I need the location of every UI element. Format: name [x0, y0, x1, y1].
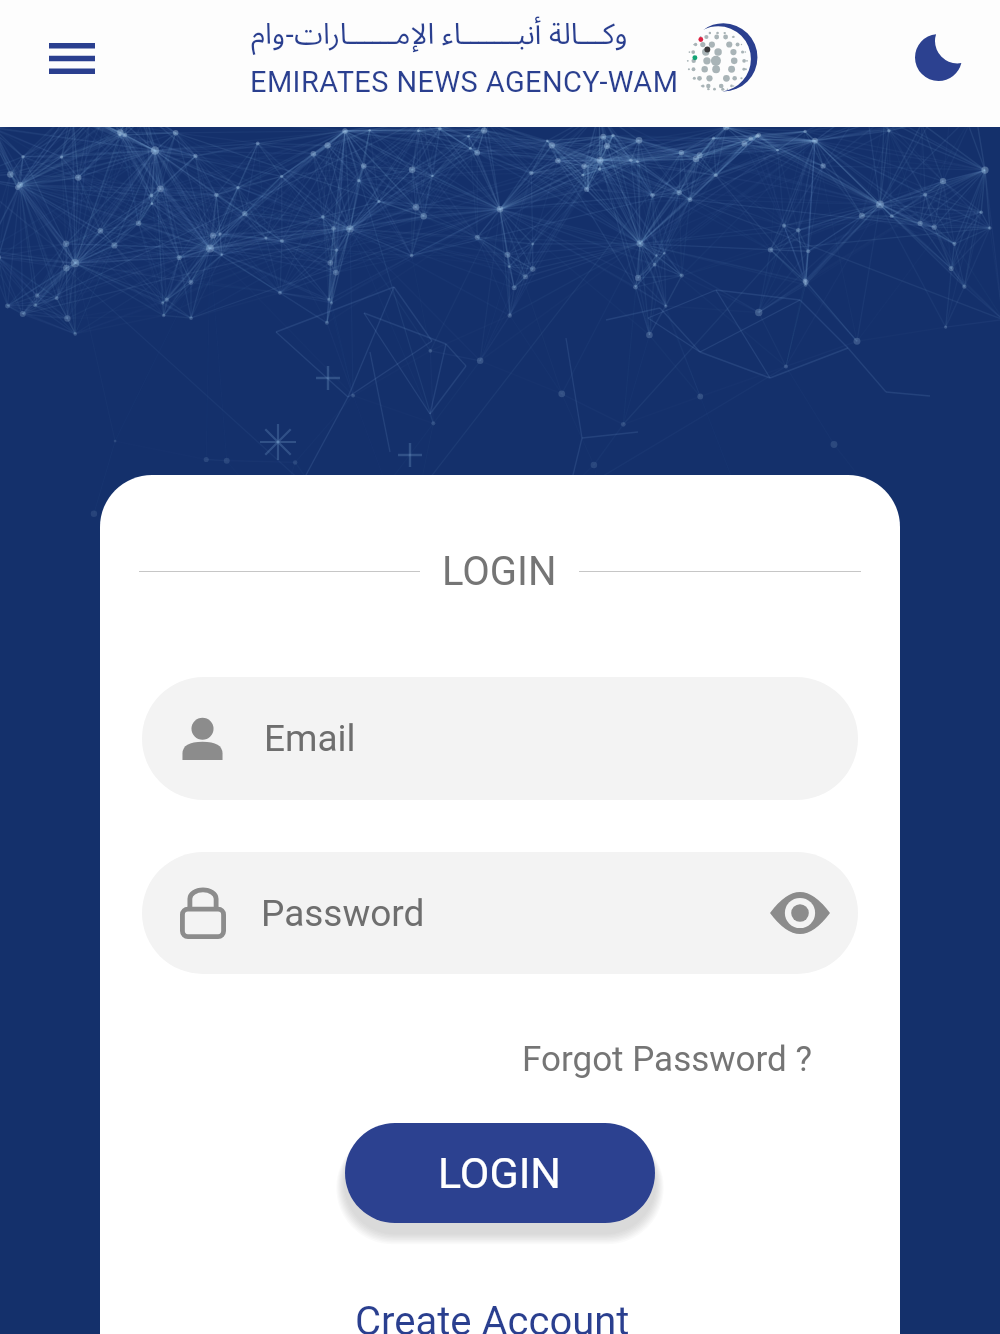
button[interactable]: Dark mode — [898, 17, 978, 97]
button[interactable]: Password — [142, 852, 858, 974]
staticText: LOGIN — [438, 1148, 562, 1198]
button[interactable]: وكـــالة أنبـــــــاء الإمــــــارات-وام — [250, 4, 679, 99]
staticText: وكـــالة أنبـــــــاء الإمــــــارات-وام — [251, 4, 628, 65]
button[interactable]: Menu — [26, 18, 118, 98]
button[interactable]: Email — [142, 677, 858, 800]
button[interactable]: LOGIN — [345, 1123, 655, 1223]
button[interactable]: Show password — [752, 865, 848, 961]
button[interactable]: Create Account — [355, 1298, 630, 1334]
button[interactable]: Forgot Password ? — [516, 1033, 819, 1086]
staticText: EMIRATES NEWS AGENCY-WAM — [250, 65, 679, 99]
staticText: Password — [261, 892, 425, 935]
staticText: Forgot Password ? — [522, 1039, 813, 1080]
staticText: Email — [264, 717, 356, 760]
staticText: LOGIN — [442, 548, 557, 595]
staticText: Create Account — [355, 1298, 630, 1334]
